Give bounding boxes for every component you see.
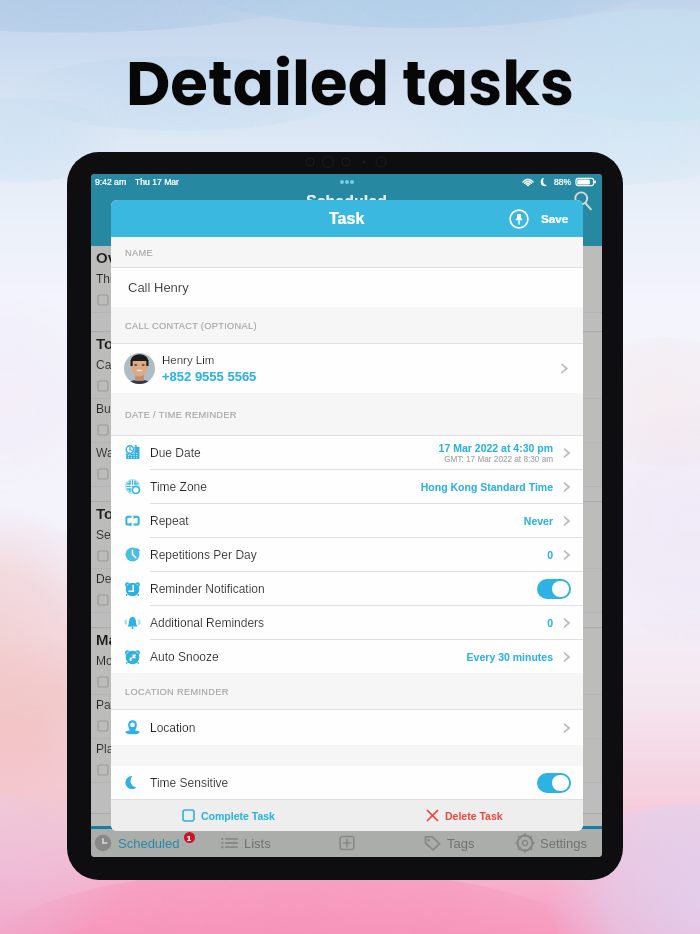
staticText: Detailed tasks <box>126 41 574 126</box>
button[interactable]: Henry Lim <box>111 344 583 393</box>
staticText: 88% <box>554 177 572 187</box>
button[interactable]: Location <box>111 710 583 745</box>
staticText: Location <box>150 721 196 734</box>
staticText: 17 Mar 2022 at 4:30 pm <box>438 442 553 454</box>
staticText: Thu 17 Mar <box>135 177 179 187</box>
button[interactable]: Due Date <box>111 436 583 469</box>
staticText: Overdue <box>96 249 157 266</box>
button[interactable]: Complete Task <box>111 800 347 831</box>
button[interactable]: Save <box>509 200 569 237</box>
button[interactable]: Additional Reminders <box>111 606 583 639</box>
staticText: 0 <box>547 549 553 561</box>
staticText: DATE / TIME REMINDER <box>125 410 237 420</box>
staticText: CALL CONTACT (OPTIONAL) <box>125 321 257 331</box>
staticText: Scheduled <box>306 193 387 211</box>
staticText: Monthly review <box>96 654 177 667</box>
button[interactable]: Repetitions Per Day <box>111 538 583 571</box>
staticText: LOCATION REMINDER <box>125 687 229 697</box>
staticText: Time Sensitive <box>150 776 229 789</box>
button[interactable]: Reminder Notification <box>111 572 583 605</box>
button[interactable]: Call Henry <box>111 268 583 307</box>
staticText: Never <box>523 515 553 527</box>
staticText: Send the report <box>96 528 179 541</box>
staticText: Reminder Notification <box>150 582 265 595</box>
staticText: Today <box>96 335 140 352</box>
button[interactable]: Time Zone <box>111 470 583 503</box>
staticText: Every 30 minutes <box>466 651 553 663</box>
staticText: Save <box>541 212 569 225</box>
staticText: +852 9555 5565 <box>162 369 257 384</box>
button[interactable]: Time Sensitive <box>111 766 583 799</box>
staticText: 0 <box>547 617 553 629</box>
staticText: 1 <box>187 834 192 842</box>
button[interactable]: Lists <box>194 829 296 857</box>
staticText: Dentist appointment <box>96 572 203 585</box>
button[interactable]: Repeat <box>111 504 583 537</box>
staticText: Auto Snooze <box>150 650 219 663</box>
staticText: Scheduled <box>118 836 180 851</box>
staticText: Additional Reminders <box>150 616 265 629</box>
staticText: Henry Lim <box>162 354 215 367</box>
staticText: Pay the bills <box>96 698 161 711</box>
staticText: Buy groceries today <box>96 402 203 415</box>
staticText: March <box>96 631 141 648</box>
staticText: This is an overdue task <box>96 272 220 285</box>
staticText: Time Zone <box>150 480 207 493</box>
staticText: Tomorrow <box>96 505 169 522</box>
button[interactable]: Delete Task <box>347 800 583 831</box>
staticText: Plan the trip <box>96 742 161 755</box>
staticText: Hong Kong Standard Time <box>420 481 553 493</box>
staticText: Due Date <box>150 446 201 459</box>
staticText: Task <box>329 210 365 228</box>
button[interactable]: Auto Snooze <box>111 640 583 673</box>
staticText: Tags <box>447 836 475 851</box>
staticText: Call Henry <box>128 280 189 295</box>
staticText: Settings <box>540 836 587 851</box>
staticText: Delete Task <box>445 810 503 822</box>
button[interactable]: Tags <box>398 829 500 857</box>
staticText: Water the plants <box>96 446 183 459</box>
staticText: GMT: 17 Mar 2022 at 8:30 am <box>444 455 553 464</box>
staticText: Repeat <box>150 514 189 527</box>
button[interactable]: Settings <box>500 829 602 857</box>
staticText: Lists <box>244 836 271 851</box>
button[interactable]: Search <box>572 190 594 212</box>
button[interactable]: Add task <box>296 829 398 857</box>
staticText: Repetitions Per Day <box>150 548 257 561</box>
staticText: Call Henry <box>96 358 153 371</box>
button[interactable]: Scheduled <box>91 829 194 857</box>
staticText: NAME <box>125 248 153 258</box>
staticText: Complete Task <box>201 810 275 822</box>
staticText: 9:42 am <box>95 177 127 187</box>
